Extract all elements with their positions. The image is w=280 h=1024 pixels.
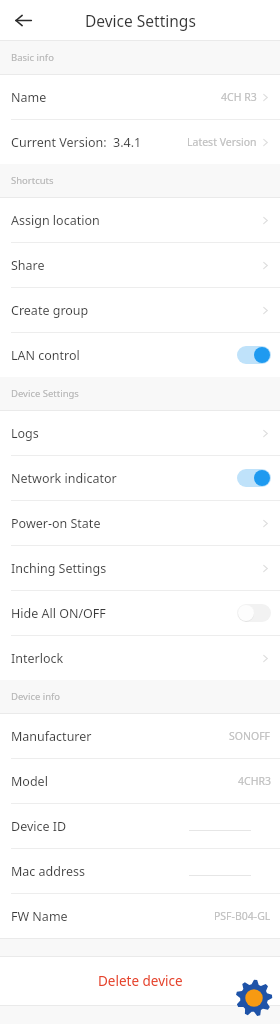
staticText: LAN control: [11, 347, 80, 364]
staticText: Current Version: 3.4.1: [11, 134, 142, 151]
button[interactable]: Settings: [233, 977, 275, 1019]
staticText: Basic info: [11, 51, 54, 64]
staticText: Delete device: [98, 972, 183, 990]
staticText: FW Name: [11, 908, 68, 925]
button[interactable]: Back: [9, 6, 37, 34]
staticText: Power-on State: [11, 515, 101, 532]
staticText: Latest Version: [187, 135, 257, 149]
staticText: Network indicator: [11, 470, 117, 487]
staticText: 4CH R3: [221, 90, 257, 104]
staticText: PSF-B04-GL: [214, 909, 271, 923]
staticText: Device ID: [11, 818, 67, 835]
button[interactable]: LAN control: [0, 333, 280, 377]
staticText: Inching Settings: [11, 560, 107, 577]
staticText: Logs: [11, 425, 39, 442]
staticText: Assign location: [11, 212, 100, 229]
staticText: Model: [11, 773, 48, 790]
button[interactable]: Create group: [0, 288, 280, 332]
button[interactable]: FW Name: [0, 894, 280, 938]
staticText: Manufacturer: [11, 728, 92, 745]
button[interactable]: Current Version: 3.4.1: [0, 120, 280, 164]
button[interactable]: Assign location: [0, 198, 280, 242]
button[interactable]: Hide All ON/OFF: [0, 591, 280, 635]
staticText: 4CHR3: [238, 774, 271, 788]
staticText: Name: [11, 89, 47, 106]
staticText: SONOFF: [229, 729, 271, 743]
staticText: Shortcuts: [11, 174, 54, 187]
button[interactable]: Share: [0, 243, 280, 287]
button[interactable]: Inching Settings: [0, 546, 280, 590]
button[interactable]: Interlock: [0, 636, 280, 680]
staticText: Device Settings: [11, 387, 79, 400]
button[interactable]: Delete device: [0, 957, 280, 1005]
button[interactable]: Name: [0, 75, 280, 119]
button[interactable]: [237, 346, 271, 364]
staticText: Hide All ON/OFF: [11, 605, 106, 622]
staticText: Create group: [11, 302, 89, 319]
button[interactable]: Logs: [0, 411, 280, 455]
staticText: Mac address: [11, 863, 85, 880]
staticText: Device Settings: [85, 10, 196, 31]
button[interactable]: Device ID: [0, 804, 280, 848]
button[interactable]: Mac address: [0, 849, 280, 893]
staticText: Device info: [11, 690, 61, 703]
button[interactable]: [237, 469, 271, 487]
button[interactable]: Manufacturer: [0, 714, 280, 758]
staticText: Interlock: [11, 650, 64, 667]
button[interactable]: Power-on State: [0, 501, 280, 545]
button[interactable]: [237, 604, 271, 622]
button[interactable]: Model: [0, 759, 280, 803]
button[interactable]: Network indicator: [0, 456, 280, 500]
staticText: Share: [11, 257, 45, 274]
